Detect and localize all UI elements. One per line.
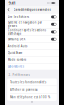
button[interactable]: Mon téléphone est à 100 %	[7, 94, 57, 101]
staticText: Toutes les fonctionnalités	[10, 80, 46, 84]
staticText: Afficher ce panneau	[10, 88, 38, 91]
staticText: Caractéristiques avancées	[13, 8, 50, 11]
button[interactable]: Back	[5, 6, 12, 14]
staticText: Android Auto	[8, 44, 28, 48]
button[interactable]: Lire les fichiers	[5, 14, 59, 20]
button[interactable]: Laboratoires	[5, 63, 59, 70]
button[interactable]: Android Auto	[5, 43, 59, 49]
staticText: Mon téléphone est à 100 %	[10, 95, 50, 99]
staticText: Samsung DeX	[8, 37, 26, 41]
staticText: Laboratoires	[8, 65, 24, 68]
button[interactable]: Système et navigation par gestes	[5, 20, 59, 28]
staticText: 9:41	[8, 0, 15, 6]
button[interactable]: Toutes les fonctionnalités	[7, 78, 57, 86]
button[interactable]: Mode sombre	[5, 57, 59, 63]
button[interactable]: Continuer après les actions d'affichage	[5, 28, 59, 35]
staticText: Mode sombre	[8, 58, 27, 61]
button[interactable]: Samsung DeX	[5, 36, 59, 43]
staticText: Système et navigation par gestes	[8, 21, 42, 28]
button[interactable]: Quick Share	[5, 50, 59, 56]
staticText: 2. Préférences	[8, 73, 29, 77]
staticText: Quick Share	[8, 51, 23, 55]
staticText: Continuer après les actions d'affichage	[8, 28, 46, 35]
staticText: Lire les fichiers	[8, 15, 29, 19]
button[interactable]: Afficher ce panneau	[7, 86, 57, 93]
